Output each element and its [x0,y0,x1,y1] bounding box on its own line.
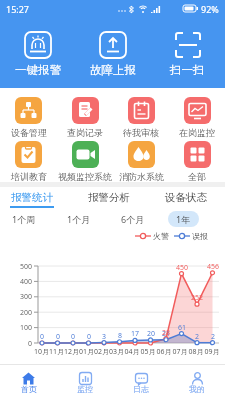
staticText: 8 [112,331,128,341]
button[interactable]: 待我审核 [113,97,169,138]
staticText: 05月 [140,347,156,357]
staticText: 全部 [188,171,206,182]
staticText: 01月 [79,347,94,357]
staticText: 92% [201,3,219,15]
button[interactable]: 全部 [169,141,225,182]
button[interactable]: 扫一扫 [150,30,225,77]
button[interactable]: 1个月 [59,211,99,227]
staticText: 0 [81,332,97,342]
button[interactable]: 日志 [113,365,169,400]
staticText: 误报 [192,231,208,241]
staticText: 一键报警 [15,63,61,77]
button[interactable]: 首页 [0,365,57,400]
button[interactable]: 设备状态 [164,187,208,208]
staticText: 09月 [204,347,220,357]
staticText: 12月 [64,347,79,357]
staticText: 查岗记录 [67,127,103,138]
button[interactable]: 我的 [169,365,225,400]
staticText: 04月 [124,347,140,357]
staticText: 06月 [156,347,172,357]
staticText: 15:27 [6,3,30,15]
button[interactable]: 设备管理 [0,97,57,138]
button[interactable]: 报警分析 [87,187,131,208]
staticText: 61 [174,323,190,333]
button[interactable]: 视频监控系统 [57,141,113,182]
staticText: 火警 [153,231,169,241]
button[interactable]: 消防水系统 [113,141,169,182]
button[interactable]: 报警统计 [10,187,54,208]
staticText: 设备管理 [11,127,47,138]
staticText: 扫一扫 [170,63,205,77]
staticText: 500 [0,262,32,272]
staticText: 视频监控系统 [58,171,112,182]
staticText: 21 [158,329,174,339]
staticText: 我的 [189,384,205,394]
staticText: 300 [0,292,32,302]
staticText: 252 [187,293,207,303]
button[interactable]: 故障上报 [75,30,150,77]
staticText: 设备状态 [165,191,207,204]
staticText: 2 [205,332,221,342]
staticText: 100 [0,323,32,333]
staticText: 报警分析 [88,191,130,204]
button[interactable]: 在岗监控 [169,97,225,138]
staticText: 03月 [109,347,124,357]
button[interactable]: 查岗记录 [57,97,113,138]
staticText: 1个周 [12,213,36,225]
staticText: 待我审核 [123,127,159,138]
staticText: 首页 [21,384,37,394]
staticText: 07月 [172,347,188,357]
staticText: 0 [50,332,66,342]
staticText: 20 [143,329,159,339]
staticText: 报警统计 [11,191,53,204]
staticText: 02月 [94,347,109,357]
staticText: 0 [65,332,81,342]
staticText: 在岗监控 [179,127,215,138]
staticText: 0 [34,332,50,342]
staticText: 0 [0,339,32,349]
staticText: 1年 [176,213,191,225]
staticText: 1个月 [67,213,91,225]
staticText: 11月 [49,347,64,357]
staticText: 456 [203,262,223,272]
button[interactable]: 一键报警 [0,30,75,77]
staticText: 故障上报 [90,63,136,77]
button[interactable]: 6个月 [113,211,153,227]
button[interactable]: 监控 [57,365,113,400]
staticText: 10月 [34,347,49,357]
staticText: 200 [0,308,32,318]
staticText: 培训教育 [11,171,47,182]
staticText: 17 [127,329,143,339]
staticText: 28 [156,328,176,338]
staticText: 450 [172,263,192,273]
staticText: 消防水系统 [119,171,164,182]
button[interactable]: 1个周 [4,211,44,227]
staticText: 日志 [133,384,149,394]
button[interactable]: 1年 [168,211,199,227]
staticText: 6个月 [121,213,145,225]
staticText: 监控 [77,384,93,394]
staticText: 08月 [188,347,204,357]
staticText: 400 [0,277,32,287]
staticText: 3 [96,332,112,342]
button[interactable]: 培训教育 [0,141,57,182]
staticText: 2 [189,332,205,342]
